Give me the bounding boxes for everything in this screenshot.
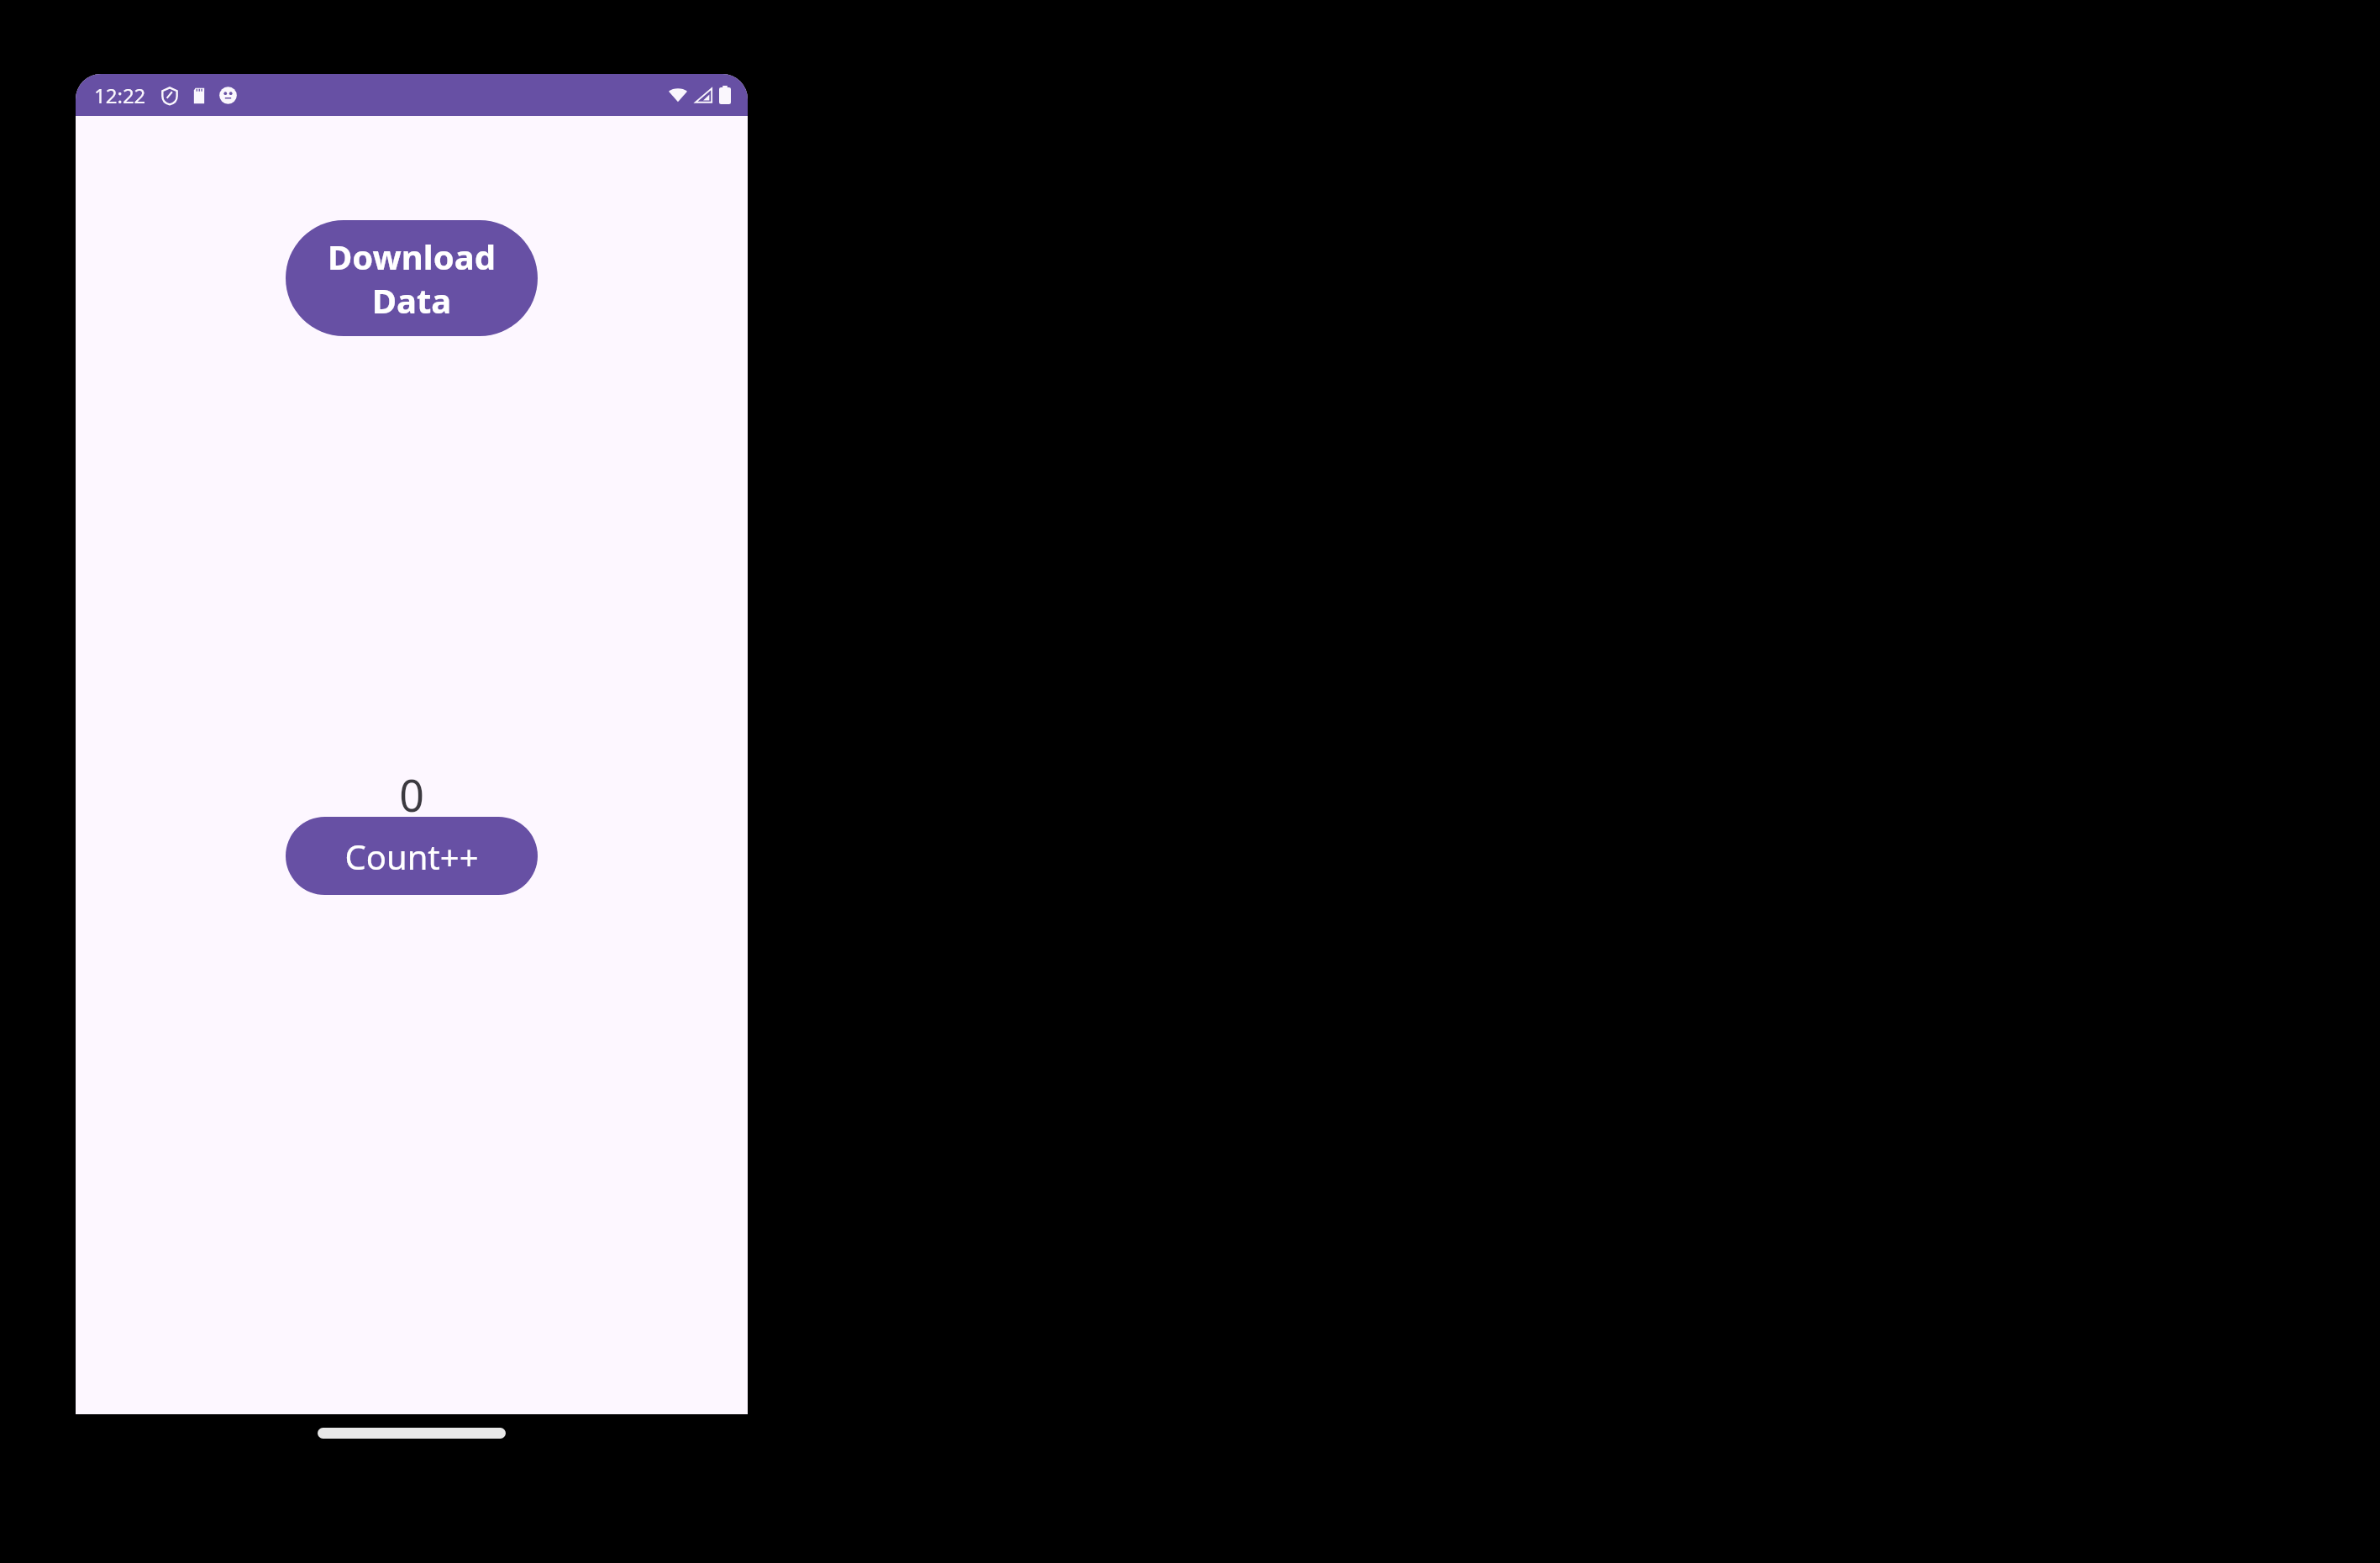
button[interactable]: Download Data <box>286 220 538 336</box>
staticText: Download Data <box>328 234 496 324</box>
staticText: 12:22 <box>94 82 146 109</box>
button[interactable]: Count++ <box>286 817 538 895</box>
staticText: 0 <box>399 765 424 824</box>
staticText: Count++ <box>344 834 479 879</box>
